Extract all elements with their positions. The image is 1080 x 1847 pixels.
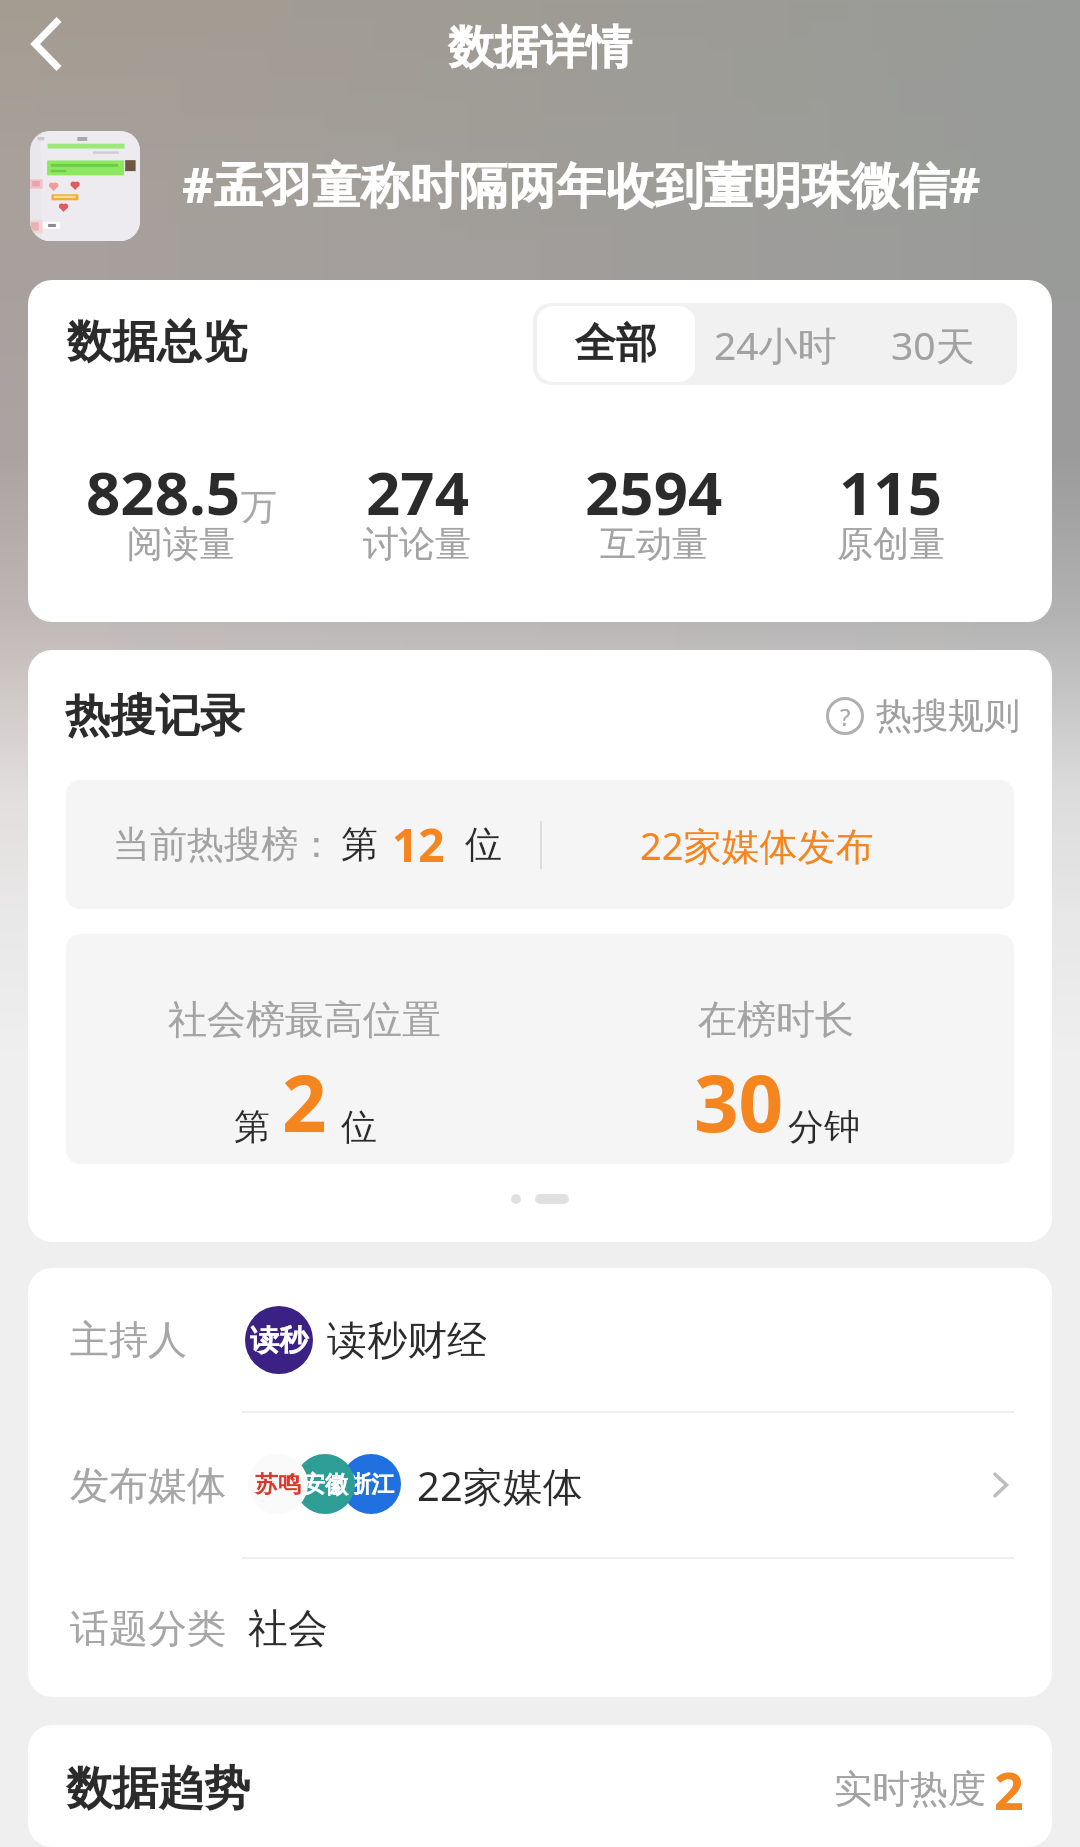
staticText: 发布媒体 — [70, 1461, 226, 1510]
staticText: 数据详情 — [448, 19, 632, 77]
button[interactable]: 全部 — [537, 306, 695, 382]
button[interactable]: ? — [826, 693, 1020, 738]
staticText: 话题分类 — [70, 1604, 226, 1653]
staticText: 万 — [241, 484, 277, 529]
staticText: 数据趋势 — [66, 1760, 250, 1818]
staticText: 24小时 — [714, 318, 837, 371]
staticText: 原创量 — [837, 521, 945, 566]
staticText: 互动量 — [600, 521, 708, 566]
staticText: 2594 — [585, 451, 723, 533]
button[interactable]: 24小时 — [699, 303, 851, 385]
staticText: 274 — [366, 451, 469, 533]
staticText: 分钟 — [788, 1104, 860, 1149]
staticText: 苏鸣 — [255, 1470, 301, 1499]
staticText: 实时热度 — [834, 1765, 986, 1813]
staticText: 社会榜最高位置 — [168, 995, 441, 1044]
button[interactable]: 话题分类 — [70, 1559, 1052, 1697]
staticText: 30 — [694, 1049, 784, 1155]
button[interactable]: Back — [12, 11, 78, 77]
staticText: 读秒 — [250, 1322, 308, 1359]
staticText: 12 — [392, 813, 445, 876]
staticText: 位 — [341, 1104, 377, 1149]
staticText: 828.5 — [86, 451, 241, 533]
staticText: 热搜记录 — [65, 688, 245, 745]
staticText: ? — [840, 700, 851, 733]
staticText: 22家媒体 — [417, 1458, 583, 1513]
staticText: 主持人 — [70, 1315, 187, 1364]
staticText: 在榜时长 — [698, 995, 854, 1044]
button[interactable]: 30天 — [863, 303, 1003, 385]
staticText: 115 — [839, 451, 942, 533]
staticText: 2 — [994, 1754, 1024, 1825]
staticText: 阅读量 — [127, 521, 235, 566]
button[interactable]: 主持人 — [70, 1268, 1052, 1411]
staticText: 热搜规则 — [876, 693, 1020, 738]
staticText: 当前热搜榜： — [113, 821, 335, 868]
staticText: 2 — [282, 1049, 327, 1155]
staticText: 30天 — [891, 318, 975, 371]
staticText: 读秒财经 — [327, 1315, 487, 1365]
other: More media — [980, 1465, 1020, 1505]
staticText: 安徽 — [302, 1470, 348, 1499]
staticText: #孟羽童称时隔两年收到董明珠微信# — [182, 151, 981, 218]
staticText: 第 — [234, 1104, 270, 1149]
staticText: 讨论量 — [363, 521, 471, 566]
staticText: 位 — [465, 821, 502, 868]
button[interactable]: 发布媒体 — [70, 1413, 1020, 1557]
staticText: 浙江 — [348, 1470, 394, 1499]
staticText: 社会 — [248, 1603, 328, 1653]
staticText: 22家媒体发布 — [640, 819, 874, 871]
staticText: 全部 — [575, 318, 657, 370]
staticText: 数据总览 — [67, 314, 247, 371]
staticText: 第 — [341, 821, 378, 868]
